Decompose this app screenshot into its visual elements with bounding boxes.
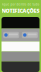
staticText: Fique por dentro de tudo bbox=[1, 3, 39, 6]
button[interactable]: Notificação bbox=[22, 32, 38, 38]
staticText: NOTIFICAÇÕES bbox=[1, 7, 39, 14]
button[interactable]: Notificação bbox=[3, 32, 19, 38]
